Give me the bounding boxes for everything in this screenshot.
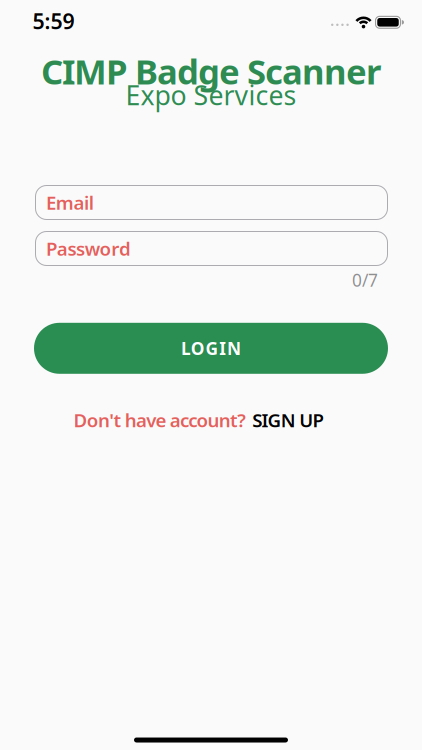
button[interactable]: LOGIN [34, 323, 388, 374]
staticText: 5:59 [32, 7, 74, 35]
staticText: SIGN UP [252, 408, 323, 432]
staticText: Email [46, 190, 94, 215]
button[interactable]: Email [35, 185, 388, 220]
staticText: Password [46, 236, 131, 261]
staticText: 0/7 [352, 268, 378, 291]
staticText: Don't have account? [74, 408, 246, 432]
staticText: Expo Services [125, 77, 296, 113]
button[interactable]: Don't have account? [74, 408, 323, 432]
button[interactable]: Password [35, 231, 388, 266]
staticText: CIMP Badge Scanner [41, 48, 381, 94]
staticText: LOGIN [181, 337, 241, 360]
